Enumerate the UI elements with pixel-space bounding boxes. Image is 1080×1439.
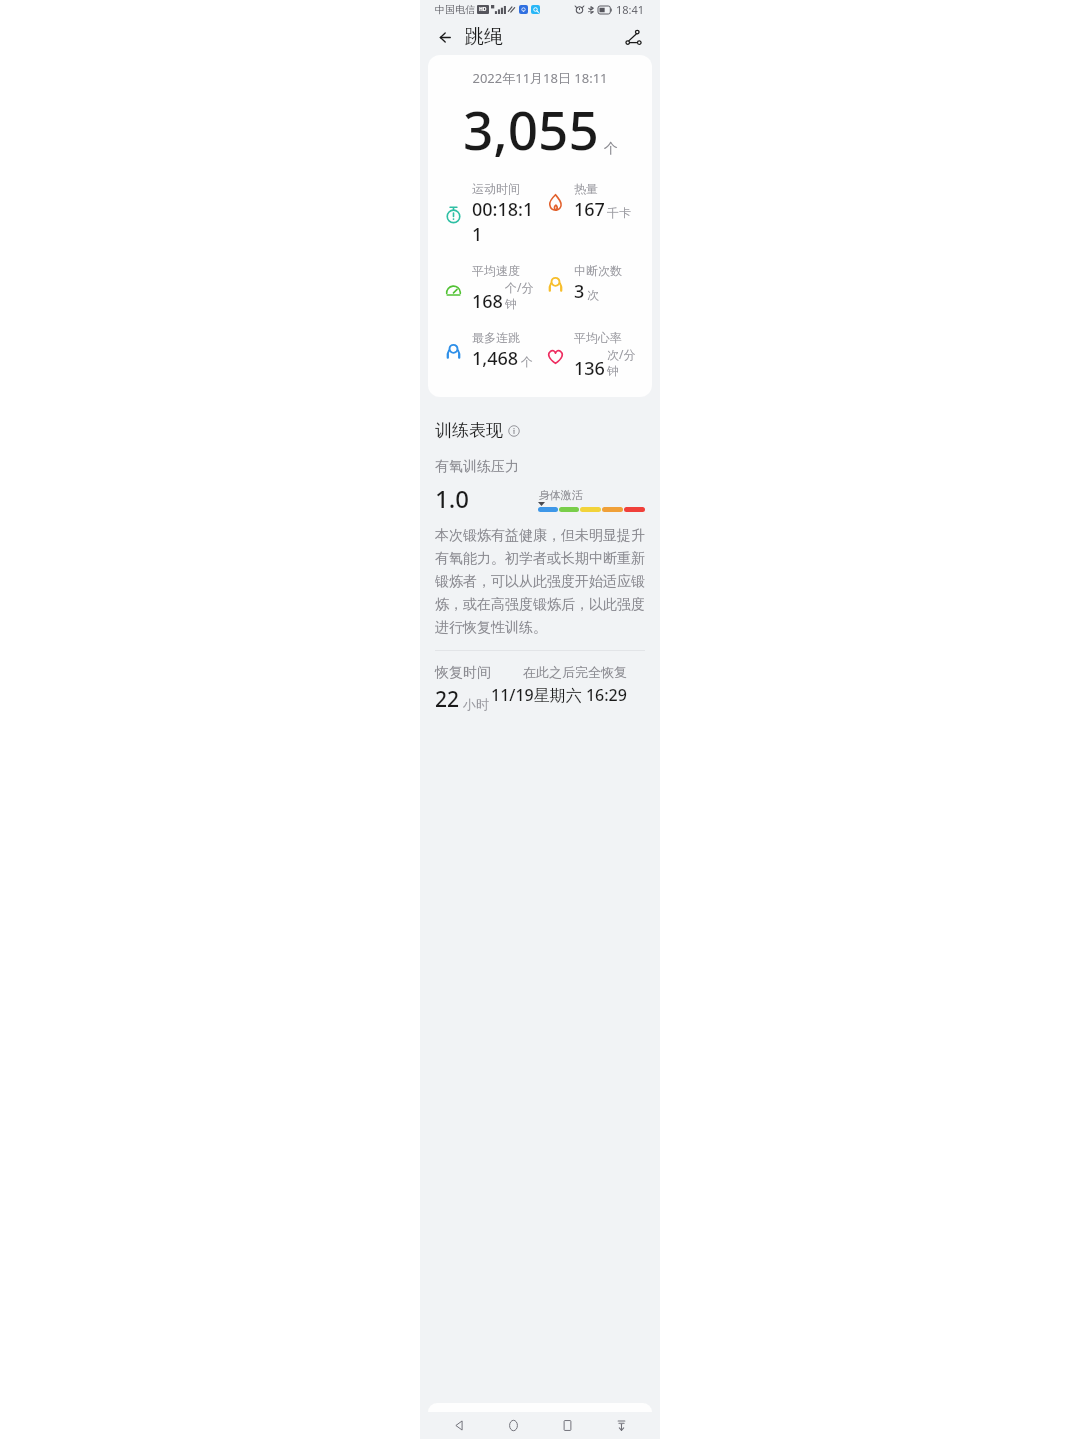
staticText: 小时 (463, 696, 489, 712)
staticText: 在此之后完全恢复 (523, 664, 627, 680)
button[interactable]: Back (444, 1412, 474, 1439)
staticText: 平均心率 (574, 330, 622, 345)
button[interactable]: 最多连跳 (441, 330, 543, 371)
button[interactable]: 2022年11月18日 18:11 (428, 55, 652, 397)
staticText: 18:41 (616, 2, 645, 17)
staticText: 167 (574, 197, 605, 222)
button[interactable]: Hide navigation (606, 1412, 636, 1439)
button[interactable]: 中断次数 (543, 263, 646, 304)
button[interactable]: Recents (552, 1412, 582, 1439)
staticText: 个 (521, 354, 533, 369)
staticText: 1.0 (435, 482, 469, 515)
staticText: 训练表现 (435, 420, 503, 441)
staticText: 次 (587, 287, 599, 302)
button[interactable]: 平均心率 (543, 330, 646, 381)
button[interactable]: 热量 (543, 181, 646, 222)
staticText: 热量 (574, 181, 598, 196)
staticText: 136 (574, 356, 605, 381)
button[interactable]: 训练表现 (435, 420, 520, 441)
staticText: 00:18:11 (472, 197, 543, 247)
staticText: 本次锻炼有益健康，但未明显提升有氧能力。初学者或长期中断重新锻炼者，可以从此强度… (435, 527, 645, 636)
staticText: HD (479, 6, 487, 13)
staticText: 3,055 (463, 93, 599, 165)
staticText: 运动时间 (472, 181, 520, 196)
button[interactable]: 运动时间 (441, 181, 543, 247)
staticText: 168 (472, 289, 503, 314)
staticText: 千卡 (607, 205, 631, 220)
staticText: 平均速度 (472, 263, 520, 278)
staticText: 2022年11月18日 18:11 (428, 69, 652, 87)
staticText: 3 (574, 279, 585, 304)
staticText: 身体激活 (539, 488, 583, 502)
staticText: 1,468 (472, 346, 519, 371)
staticText: 恢复时间 (435, 664, 491, 682)
button[interactable]: 平均速度 (441, 263, 543, 314)
button[interactable]: Back (430, 22, 460, 52)
staticText: 22 (435, 685, 460, 714)
button[interactable]: Home (498, 1412, 528, 1439)
staticText: 11/19星期六 16:29 (491, 684, 627, 706)
staticText: 中断次数 (574, 263, 622, 278)
staticText: 次/分钟 (607, 346, 646, 379)
staticText: 个/分钟 (505, 279, 543, 312)
staticText: 最多连跳 (472, 330, 520, 345)
button[interactable]: Share (618, 22, 648, 52)
staticText: 中国电信 (435, 3, 475, 16)
staticText: 有氧训练压力 (435, 458, 519, 476)
staticText: 个 (604, 140, 618, 158)
staticText: 跳绳 (465, 25, 503, 49)
